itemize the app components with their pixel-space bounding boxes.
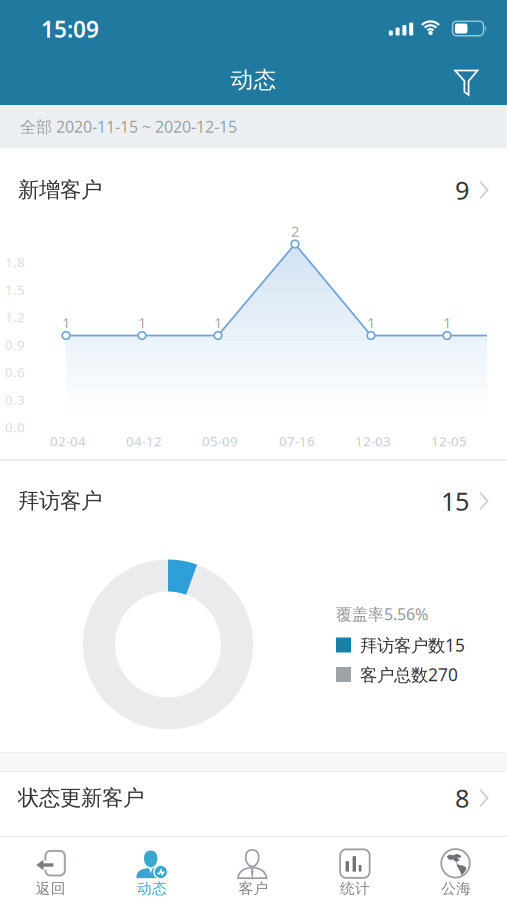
staticText: 统计 xyxy=(340,879,370,897)
staticText: 12-05 xyxy=(431,432,467,450)
button[interactable]: 状态更新客户 xyxy=(0,772,507,836)
staticText: 07-16 xyxy=(279,432,315,450)
staticText: 12-03 xyxy=(355,432,391,450)
button[interactable]: 动态 xyxy=(101,837,203,900)
staticText: 覆盖率5.56% xyxy=(336,603,428,625)
staticText: 8 xyxy=(455,781,469,815)
staticText: 1.8 xyxy=(5,253,25,271)
staticText: 1 xyxy=(138,313,146,332)
staticText: 0.0 xyxy=(5,418,25,436)
button[interactable]: 客户 xyxy=(203,837,304,900)
staticText: 02-04 xyxy=(50,432,86,450)
staticText: 返回 xyxy=(36,879,66,897)
staticText: 全部 2020-11-15 ~ 2020-12-15 xyxy=(20,116,237,137)
button[interactable]: 拜访客户 xyxy=(0,461,507,541)
staticText: 2 xyxy=(291,221,299,241)
staticText: 新增客户 xyxy=(18,177,102,203)
staticText: 动态 xyxy=(230,66,276,94)
staticText: 状态更新客户 xyxy=(18,785,144,811)
staticText: 客户 xyxy=(238,879,268,897)
staticText: 拜访客户 xyxy=(18,488,102,514)
button[interactable]: 公海 xyxy=(406,837,507,900)
staticText: 9 xyxy=(455,173,469,207)
staticText: 公海 xyxy=(441,879,471,897)
staticText: 1.5 xyxy=(5,281,25,298)
button[interactable]: 返回 xyxy=(0,837,101,900)
staticText: 1 xyxy=(443,313,451,332)
staticText: 1.2 xyxy=(5,308,25,326)
staticText: 15:09 xyxy=(41,14,99,44)
button[interactable]: 统计 xyxy=(304,837,406,900)
staticText: 动态 xyxy=(137,879,167,897)
staticText: 1 xyxy=(214,313,222,332)
staticText: 1 xyxy=(367,313,375,332)
staticText: 15 xyxy=(441,484,469,518)
staticText: 拜访客户数15 xyxy=(360,633,465,656)
staticText: 1 xyxy=(62,313,70,332)
staticText: 05-09 xyxy=(202,432,238,450)
staticText: 0.9 xyxy=(5,336,25,353)
button[interactable] xyxy=(450,67,480,97)
button[interactable]: 新增客户 xyxy=(0,148,507,218)
staticText: 客户总数270 xyxy=(360,663,458,686)
staticText: 0.6 xyxy=(5,363,25,381)
staticText: 0.3 xyxy=(5,391,25,408)
staticText: 04-12 xyxy=(126,432,162,450)
